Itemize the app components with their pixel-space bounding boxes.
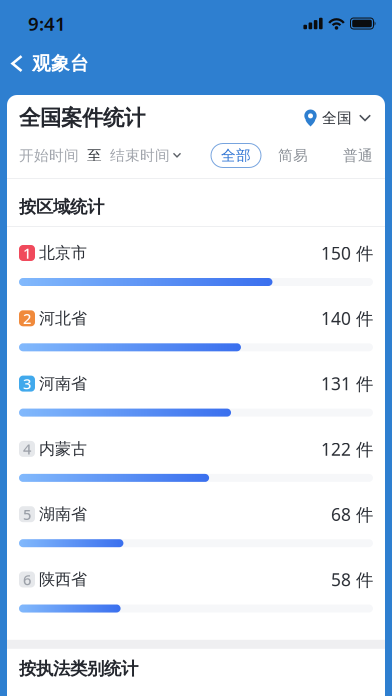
button[interactable]: 普通 [308, 146, 373, 164]
staticText: 北京市 [39, 243, 87, 263]
staticText: 2 [23, 309, 31, 328]
button[interactable]: 选择时间范围 [19, 146, 182, 164]
staticText: 简易 [278, 146, 308, 164]
staticText: 1 [23, 243, 31, 263]
staticText: 湖南省 [39, 504, 87, 524]
staticText: 结束时间 [110, 146, 170, 164]
staticText: 全国案件统计 [19, 105, 145, 131]
staticText: 内蒙古 [39, 439, 87, 459]
staticText: 河南省 [39, 374, 87, 393]
staticText: 河北省 [39, 308, 87, 328]
staticText: 58 件 [331, 568, 373, 591]
staticText: 131 件 [321, 372, 373, 395]
staticText: 陕西省 [39, 570, 87, 589]
button[interactable]: 简易 [261, 146, 308, 164]
button[interactable]: 返回 观象台 [0, 52, 89, 75]
staticText: 9:41 [28, 11, 66, 36]
staticText: 150 件 [321, 241, 373, 264]
button[interactable]: 选择地区 全国 [304, 109, 373, 127]
staticText: 观象台 [32, 52, 89, 75]
staticText: 140 件 [321, 307, 373, 330]
staticText: 全国 [322, 109, 352, 127]
staticText: 普通 [343, 146, 373, 164]
staticText: 6 [23, 570, 31, 589]
staticText: 4 [23, 439, 31, 459]
staticText: 5 [23, 504, 31, 524]
staticText: 按区域统计 [19, 196, 104, 218]
staticText: 开始时间 [19, 146, 79, 164]
staticText: 122 件 [321, 437, 373, 460]
staticText: 3 [23, 374, 31, 393]
staticText: 全部 [221, 146, 251, 164]
button[interactable]: 全部 [211, 143, 261, 167]
staticText: 至 [87, 146, 102, 164]
staticText: 按执法类别统计 [19, 658, 138, 679]
staticText: 68 件 [331, 503, 373, 526]
